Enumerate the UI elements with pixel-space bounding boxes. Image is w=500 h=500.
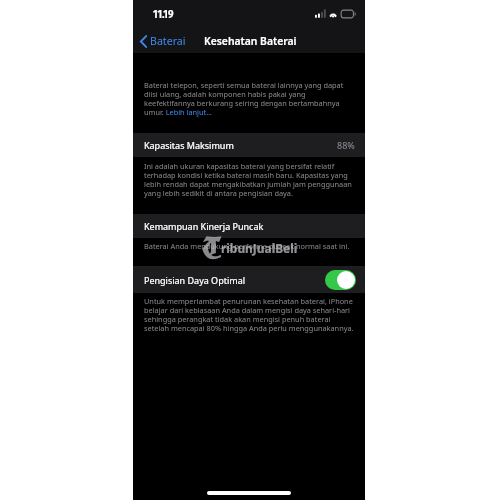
button[interactable]: Baterai — [137, 31, 189, 51]
staticText: Kesehatan Baterai — [204, 34, 297, 48]
staticText: Kemampuan Kinerja Puncak — [144, 220, 264, 232]
staticText: Baterai telepon, seperti semua baterai l… — [144, 80, 344, 117]
staticText: 11.19 — [153, 8, 174, 21]
staticText: Baterai — [150, 34, 186, 48]
button[interactable]: Kemampuan Kinerja Puncak — [133, 214, 365, 238]
staticText: Untuk memperlambat penurunan kesehatan b… — [144, 296, 354, 333]
button[interactable]: Pengisian Daya Optimal toggle — [325, 270, 356, 290]
staticText: Kapasitas Maksimum — [144, 139, 234, 151]
staticText: 88% — [337, 139, 355, 151]
button[interactable]: Pengisian Daya Optimal — [133, 266, 365, 293]
staticText: ribunJualBeli — [221, 240, 298, 256]
staticText: Pengisian Daya Optimal — [144, 274, 246, 286]
staticText: T — [202, 230, 221, 269]
staticText: Ini adalah ukuran kapasitas baterai yang… — [144, 161, 352, 198]
staticText: Baterai Anda mendukung performa puncak n… — [144, 241, 350, 251]
button[interactable]: Kapasitas Maksimum — [133, 133, 365, 157]
